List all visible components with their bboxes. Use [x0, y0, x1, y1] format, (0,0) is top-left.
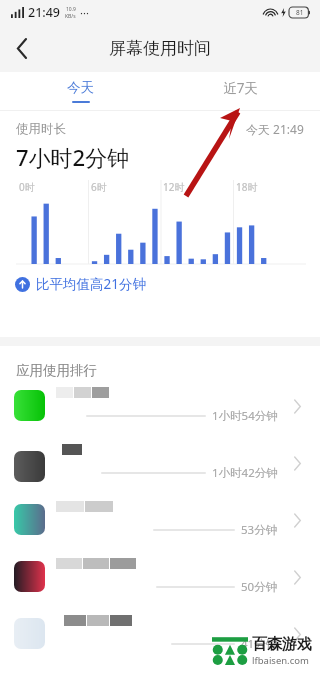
staticText: 1小时54分钟 — [212, 408, 278, 424]
staticText: 今天 — [67, 79, 94, 96]
staticText: 21:49 — [28, 4, 61, 21]
staticText: 50分钟 — [241, 579, 278, 595]
staticText: 81 — [296, 8, 304, 17]
staticText: 7小时2分钟 — [16, 142, 130, 172]
button[interactable]: 近7天 — [160, 72, 320, 109]
other: Details — [286, 395, 308, 417]
button[interactable]: 53分钟 — [0, 501, 320, 558]
button[interactable]: 41分钟 — [0, 615, 320, 672]
staticText: 比平均值高21分钟 — [36, 275, 146, 293]
other: Details — [286, 566, 308, 588]
button[interactable]: 1小时42分钟 — [0, 444, 320, 501]
other: Details — [286, 452, 308, 474]
button[interactable]: 今天 — [0, 72, 160, 109]
staticText: 屏幕使用时间 — [109, 38, 211, 59]
other: Details — [286, 623, 308, 645]
staticText: 41分钟 — [241, 636, 278, 652]
other: Details — [286, 509, 308, 531]
staticText: 10.9 — [66, 6, 76, 13]
staticText: 使用时长 — [16, 121, 66, 137]
staticText: 53分钟 — [241, 522, 278, 538]
staticText: 6时 — [91, 180, 107, 194]
staticText: KB/s — [65, 13, 76, 20]
staticText: 12时 — [163, 180, 185, 194]
staticText: 0时 — [19, 180, 35, 194]
staticText: 近7天 — [223, 79, 258, 97]
button[interactable]: Back — [0, 26, 44, 70]
staticText: 百森游戏 — [252, 635, 312, 654]
staticText: ··· — [80, 5, 89, 20]
button[interactable]: 1小时54分钟 — [0, 387, 320, 444]
staticText: 18时 — [236, 180, 258, 194]
staticText: 应用使用排行 — [16, 362, 97, 379]
button[interactable]: 50分钟 — [0, 558, 320, 615]
staticText: lfbaisen.com — [252, 654, 309, 667]
staticText: 今天 21:49 — [246, 121, 304, 137]
staticText: 1小时42分钟 — [212, 465, 278, 481]
